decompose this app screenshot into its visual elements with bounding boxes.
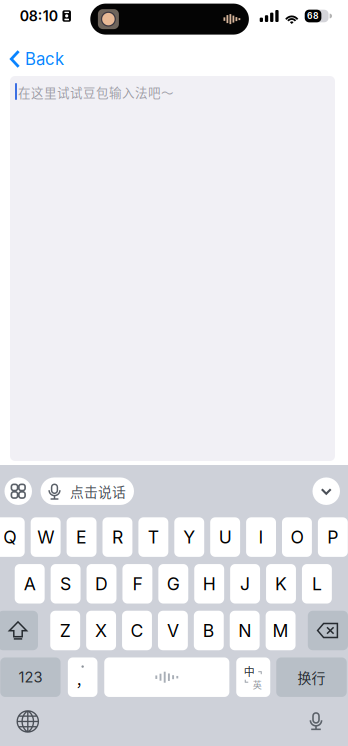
staticText: B — [203, 620, 215, 641]
button[interactable]: Dictation — [302, 704, 330, 739]
staticText: P — [327, 526, 338, 548]
button[interactable]: F — [122, 564, 152, 603]
staticText: R — [112, 526, 123, 548]
staticText: O — [290, 526, 303, 548]
staticText: S — [60, 573, 71, 594]
button[interactable]: P — [318, 517, 348, 557]
button[interactable]: I — [246, 517, 276, 557]
staticText: 点击说话 — [70, 481, 126, 501]
staticText: K — [275, 573, 287, 594]
staticText: 在这里试试豆包输入法吧～ — [18, 83, 174, 101]
button[interactable]: B — [194, 611, 224, 650]
button[interactable]: Chinese English toggle — [236, 657, 270, 697]
button[interactable]: Z — [50, 611, 80, 650]
button[interactable]: Delete — [308, 611, 348, 650]
button[interactable]: E — [67, 517, 96, 557]
button[interactable]: Comma — [68, 657, 97, 697]
staticText: H — [203, 573, 216, 594]
button[interactable]: Back — [0, 44, 74, 74]
staticText: Back — [25, 49, 64, 69]
button[interactable]: S — [51, 564, 80, 603]
staticText: J — [240, 573, 250, 594]
button[interactable]: L — [302, 564, 332, 603]
button[interactable]: 点击说话 — [40, 477, 134, 505]
staticText: 08:10 — [20, 7, 58, 24]
staticText: Y — [183, 526, 195, 548]
staticText: D — [95, 573, 108, 594]
staticText: M — [273, 620, 289, 641]
button[interactable]: J — [230, 564, 260, 603]
button[interactable]: T — [138, 517, 168, 557]
staticText: N — [238, 620, 251, 641]
staticText: W — [37, 526, 54, 548]
button[interactable]: N — [230, 611, 260, 650]
button[interactable]: X — [86, 611, 116, 650]
button[interactable]: Shift — [0, 611, 38, 650]
staticText: V — [167, 620, 179, 641]
button[interactable]: K — [266, 564, 296, 603]
staticText: T — [148, 526, 159, 548]
button[interactable]: Y — [174, 517, 204, 557]
button[interactable]: G — [158, 564, 188, 603]
staticText: I — [259, 526, 264, 548]
staticText: 换行 — [297, 667, 325, 687]
staticText: E — [76, 526, 87, 548]
button[interactable]: O — [282, 517, 312, 557]
staticText: C — [130, 620, 143, 641]
staticText: 123 — [18, 668, 42, 686]
button[interactable]: H — [194, 564, 224, 603]
staticText: 68 — [307, 11, 319, 21]
button[interactable]: M — [266, 611, 295, 650]
button[interactable]: Keyboard panel — [4, 477, 32, 505]
button[interactable]: V — [158, 611, 188, 650]
button[interactable]: U — [210, 517, 240, 557]
button[interactable]: A — [15, 564, 45, 603]
staticText: Q — [3, 526, 16, 548]
staticText: U — [219, 526, 232, 548]
staticText: L — [312, 573, 322, 594]
button[interactable]: 换行 — [276, 657, 347, 697]
staticText: Z — [60, 620, 71, 641]
button[interactable]: Switch keyboard — [10, 704, 46, 739]
button[interactable]: C — [122, 611, 152, 650]
staticText: ， — [76, 670, 90, 690]
staticText: G — [167, 573, 180, 594]
staticText: 英 — [253, 678, 262, 691]
staticText: 中 — [244, 663, 255, 679]
button[interactable]: D — [86, 564, 116, 603]
button[interactable]: Hide keyboard — [312, 477, 340, 505]
staticText: F — [132, 573, 142, 594]
button[interactable]: Q — [0, 517, 25, 557]
button[interactable]: Space — [104, 657, 229, 697]
button[interactable]: 123 — [0, 657, 60, 697]
button[interactable]: W — [31, 517, 61, 557]
staticText: A — [24, 573, 36, 594]
button[interactable]: R — [102, 517, 132, 557]
staticText: X — [95, 620, 107, 641]
